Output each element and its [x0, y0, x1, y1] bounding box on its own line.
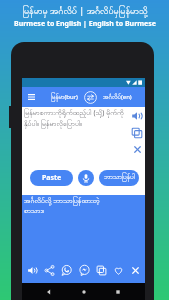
button[interactable]: WhatsApp	[59, 263, 73, 277]
staticText: Burmese to English | English to Burmese	[14, 19, 156, 29]
button[interactable]: Share	[42, 263, 56, 277]
staticText: အင်္ဂလိပ်(en)	[103, 93, 132, 102]
button[interactable]: အင်္ဂလိပ်(en)	[101, 90, 134, 105]
button[interactable]: မြန်မာ(bur)	[49, 90, 80, 105]
button[interactable]: Clear	[132, 144, 143, 155]
button[interactable]: Speak	[25, 263, 39, 277]
button[interactable]: Copy	[131, 127, 143, 139]
button[interactable]: Home	[79, 287, 89, 297]
button[interactable]: Voice input	[78, 170, 94, 186]
staticText: ဘာသာပြန်ပါ	[104, 173, 135, 183]
button[interactable]: ဘာသာပြန်ပါ	[99, 170, 139, 186]
staticText: အင်္ဂလိပ်လို့ ဘာသာပြန်ထားတဲ့ စာသား။	[24, 196, 112, 217]
button[interactable]: Copy	[94, 263, 108, 277]
button[interactable]: Speak	[131, 110, 143, 122]
staticText: မြန်မာမှ အင်္ဂလိပ် | အင်္ဂလိပ်မှမြန်မာသိ…	[22, 4, 148, 18]
staticText: မြန်မာ(bur)	[51, 93, 78, 102]
button[interactable]: Back	[44, 287, 54, 297]
button[interactable]: Recents	[113, 287, 123, 297]
staticText: မြန်မာစကားကိုရိုက်ထည့်ပါ (သို့) မိုက်ကို…	[24, 108, 131, 130]
staticText: Paste	[42, 173, 62, 183]
button[interactable]: Swap languages	[84, 91, 97, 104]
button[interactable]: Favourite	[111, 263, 125, 277]
button[interactable]: Close	[128, 263, 142, 277]
button[interactable]: Menu	[25, 91, 37, 103]
button[interactable]: Messenger	[77, 263, 91, 277]
button[interactable]: Paste	[30, 170, 73, 186]
